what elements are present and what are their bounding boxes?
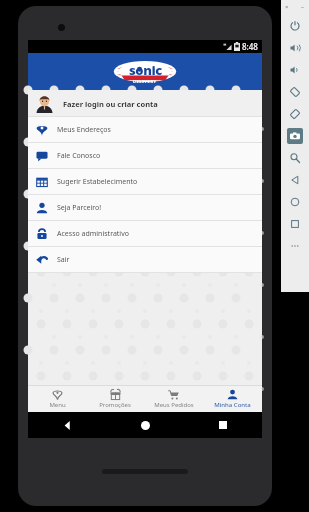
button[interactable]: Menu [28,385,86,412]
button[interactable]: Sugerir Estabelecimento [28,169,262,195]
staticText: sonic [129,61,162,79]
button[interactable]: Recents [184,412,262,438]
button[interactable]: Screenshot [284,125,306,147]
staticText: Acesso administrativo [57,229,129,239]
button[interactable]: Home [284,191,306,213]
staticText: Menu [49,401,66,409]
staticText: Seja Parceiro! [57,203,102,213]
button[interactable]: Fazer login ou criar conta [28,90,262,117]
button[interactable]: Sair [28,247,262,273]
button[interactable]: Minha Conta [203,385,262,412]
button[interactable]: Volume down [284,59,306,81]
button[interactable]: Volume up [284,37,306,59]
staticText: Meus Endereços [57,125,111,135]
button[interactable]: Rotate left [284,81,306,103]
button[interactable]: Home [106,412,184,438]
staticText: 8:48 [242,41,258,52]
staticText: Meus Pedidos [154,401,194,409]
button[interactable]: Rotate right [284,103,306,125]
staticText: Sair [57,255,70,265]
button[interactable]: Meus Endereços [28,117,262,143]
staticText: × [285,3,289,11]
staticText: Minha Conta [214,401,251,409]
staticText: DELIVERY [133,79,157,84]
staticText: Sugerir Estabelecimento [57,177,138,187]
button[interactable]: Promoções [86,385,144,412]
button[interactable]: Recents [284,213,306,235]
button[interactable]: Zoom [284,147,306,169]
staticText: – [301,3,305,11]
staticText: Promoções [99,401,131,409]
button[interactable]: Power [284,15,306,37]
button[interactable]: Back [28,412,106,438]
button[interactable]: Back [284,169,306,191]
staticText: Fale Conosco [57,151,101,161]
button[interactable]: Seja Parceiro! [28,195,262,221]
button[interactable]: Fale Conosco [28,143,262,169]
button[interactable]: More [284,235,306,257]
button[interactable]: Meus Pedidos [144,385,203,412]
button[interactable]: Acesso administrativo [28,221,262,247]
staticText: Fazer login ou criar conta [63,99,158,109]
